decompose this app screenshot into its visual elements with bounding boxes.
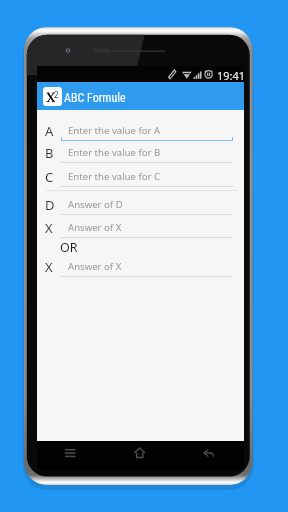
staticText: A [45,122,54,140]
button[interactable]: Recent apps [55,441,86,470]
staticText: Enter the value for A [68,124,161,137]
staticText: 19:41 [217,68,246,83]
button[interactable]: C [37,165,244,187]
staticText: Answer of X [68,221,122,234]
button[interactable]: X [37,255,244,277]
staticText: Enter the value for C [68,170,161,183]
staticText: Enter the value for B [68,146,161,159]
staticText: D [45,196,55,214]
button[interactable]: 2 [37,82,244,110]
button[interactable]: A [37,119,244,141]
button[interactable]: X [37,216,244,238]
button[interactable]: B [37,141,244,163]
staticText: C [45,168,54,186]
button[interactable]: Back [193,441,224,470]
staticText: ABC Formule [64,91,126,105]
staticText: 2 [54,89,59,100]
button[interactable]: Home [124,441,155,470]
button[interactable]: D [37,193,244,215]
button[interactable]: OR [60,239,78,254]
staticText: Answer of X [68,260,122,273]
staticText: X [45,219,53,237]
staticText: Answer of D [68,198,123,211]
staticText: X [45,258,53,276]
staticText: OR [60,239,78,254]
staticText: B [45,144,54,162]
